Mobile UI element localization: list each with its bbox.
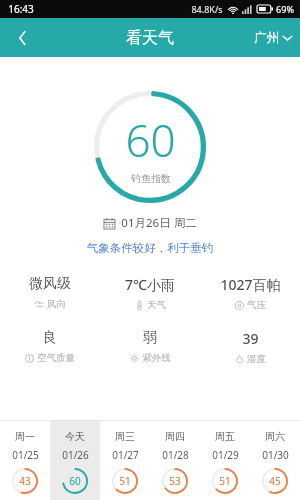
button[interactable]: 周一 [0, 421, 50, 500]
staticText: 看天气 [126, 28, 174, 48]
staticText: 良 [43, 329, 57, 347]
staticText: 气象条件较好，利于垂钓 [0, 241, 300, 255]
button[interactable]: Back [0, 18, 44, 57]
staticText: 弱 [143, 329, 157, 347]
button[interactable]: 今天 [50, 421, 100, 500]
staticText: 周四 [165, 430, 185, 443]
staticText: 45 [269, 474, 281, 488]
button[interactable]: 广州 [254, 18, 300, 57]
button[interactable]: 微风级 [0, 273, 100, 312]
button[interactable]: 1027百帕 [200, 273, 300, 313]
staticText: 39 [242, 329, 259, 348]
button[interactable]: 弱 [100, 327, 200, 366]
staticText: 湿度 [247, 353, 266, 365]
button[interactable]: 周五 [200, 421, 250, 500]
staticText: 43 [19, 474, 31, 488]
staticText: 60 [125, 110, 176, 170]
staticText: 钓鱼指数 [131, 172, 171, 185]
staticText: 01/25 [12, 448, 39, 462]
staticText: 紫外线 [142, 352, 171, 364]
staticText: 84.8K/s [191, 3, 223, 15]
staticText: 周一 [15, 430, 35, 443]
staticText: 1027百帕 [220, 275, 281, 294]
staticText: 16:43 [8, 2, 34, 16]
button[interactable]: 周六 [250, 421, 300, 500]
staticText: 01/28 [162, 448, 189, 462]
staticText: 01月26日 周二 [121, 215, 197, 231]
staticText: 01/27 [112, 448, 139, 462]
staticText: 天气 [147, 299, 166, 311]
staticText: 60 [69, 474, 81, 488]
staticText: 51 [119, 474, 131, 488]
staticText: 69% [276, 3, 294, 15]
staticText: 7℃小雨 [125, 275, 175, 294]
button[interactable]: 39 [200, 327, 300, 367]
button[interactable]: 良 [0, 327, 100, 366]
staticText: 今天 [65, 430, 85, 443]
staticText: 周三 [115, 430, 135, 443]
staticText: 气压 [247, 299, 266, 311]
staticText: 周五 [215, 430, 235, 443]
staticText: 01/26 [62, 448, 89, 462]
button[interactable]: 周四 [150, 421, 200, 500]
staticText: 51 [219, 474, 231, 488]
staticText: 广州 [254, 30, 279, 46]
button[interactable]: 周三 [100, 421, 150, 500]
staticText: 01/30 [262, 448, 289, 462]
staticText: 01/29 [212, 448, 239, 462]
button[interactable]: 7℃小雨 [100, 273, 200, 313]
staticText: 微风级 [29, 275, 71, 293]
staticText: 周六 [265, 430, 285, 443]
staticText: 53 [169, 474, 181, 488]
staticText: 风向 [47, 298, 66, 310]
staticText: 空气质量 [37, 352, 75, 364]
